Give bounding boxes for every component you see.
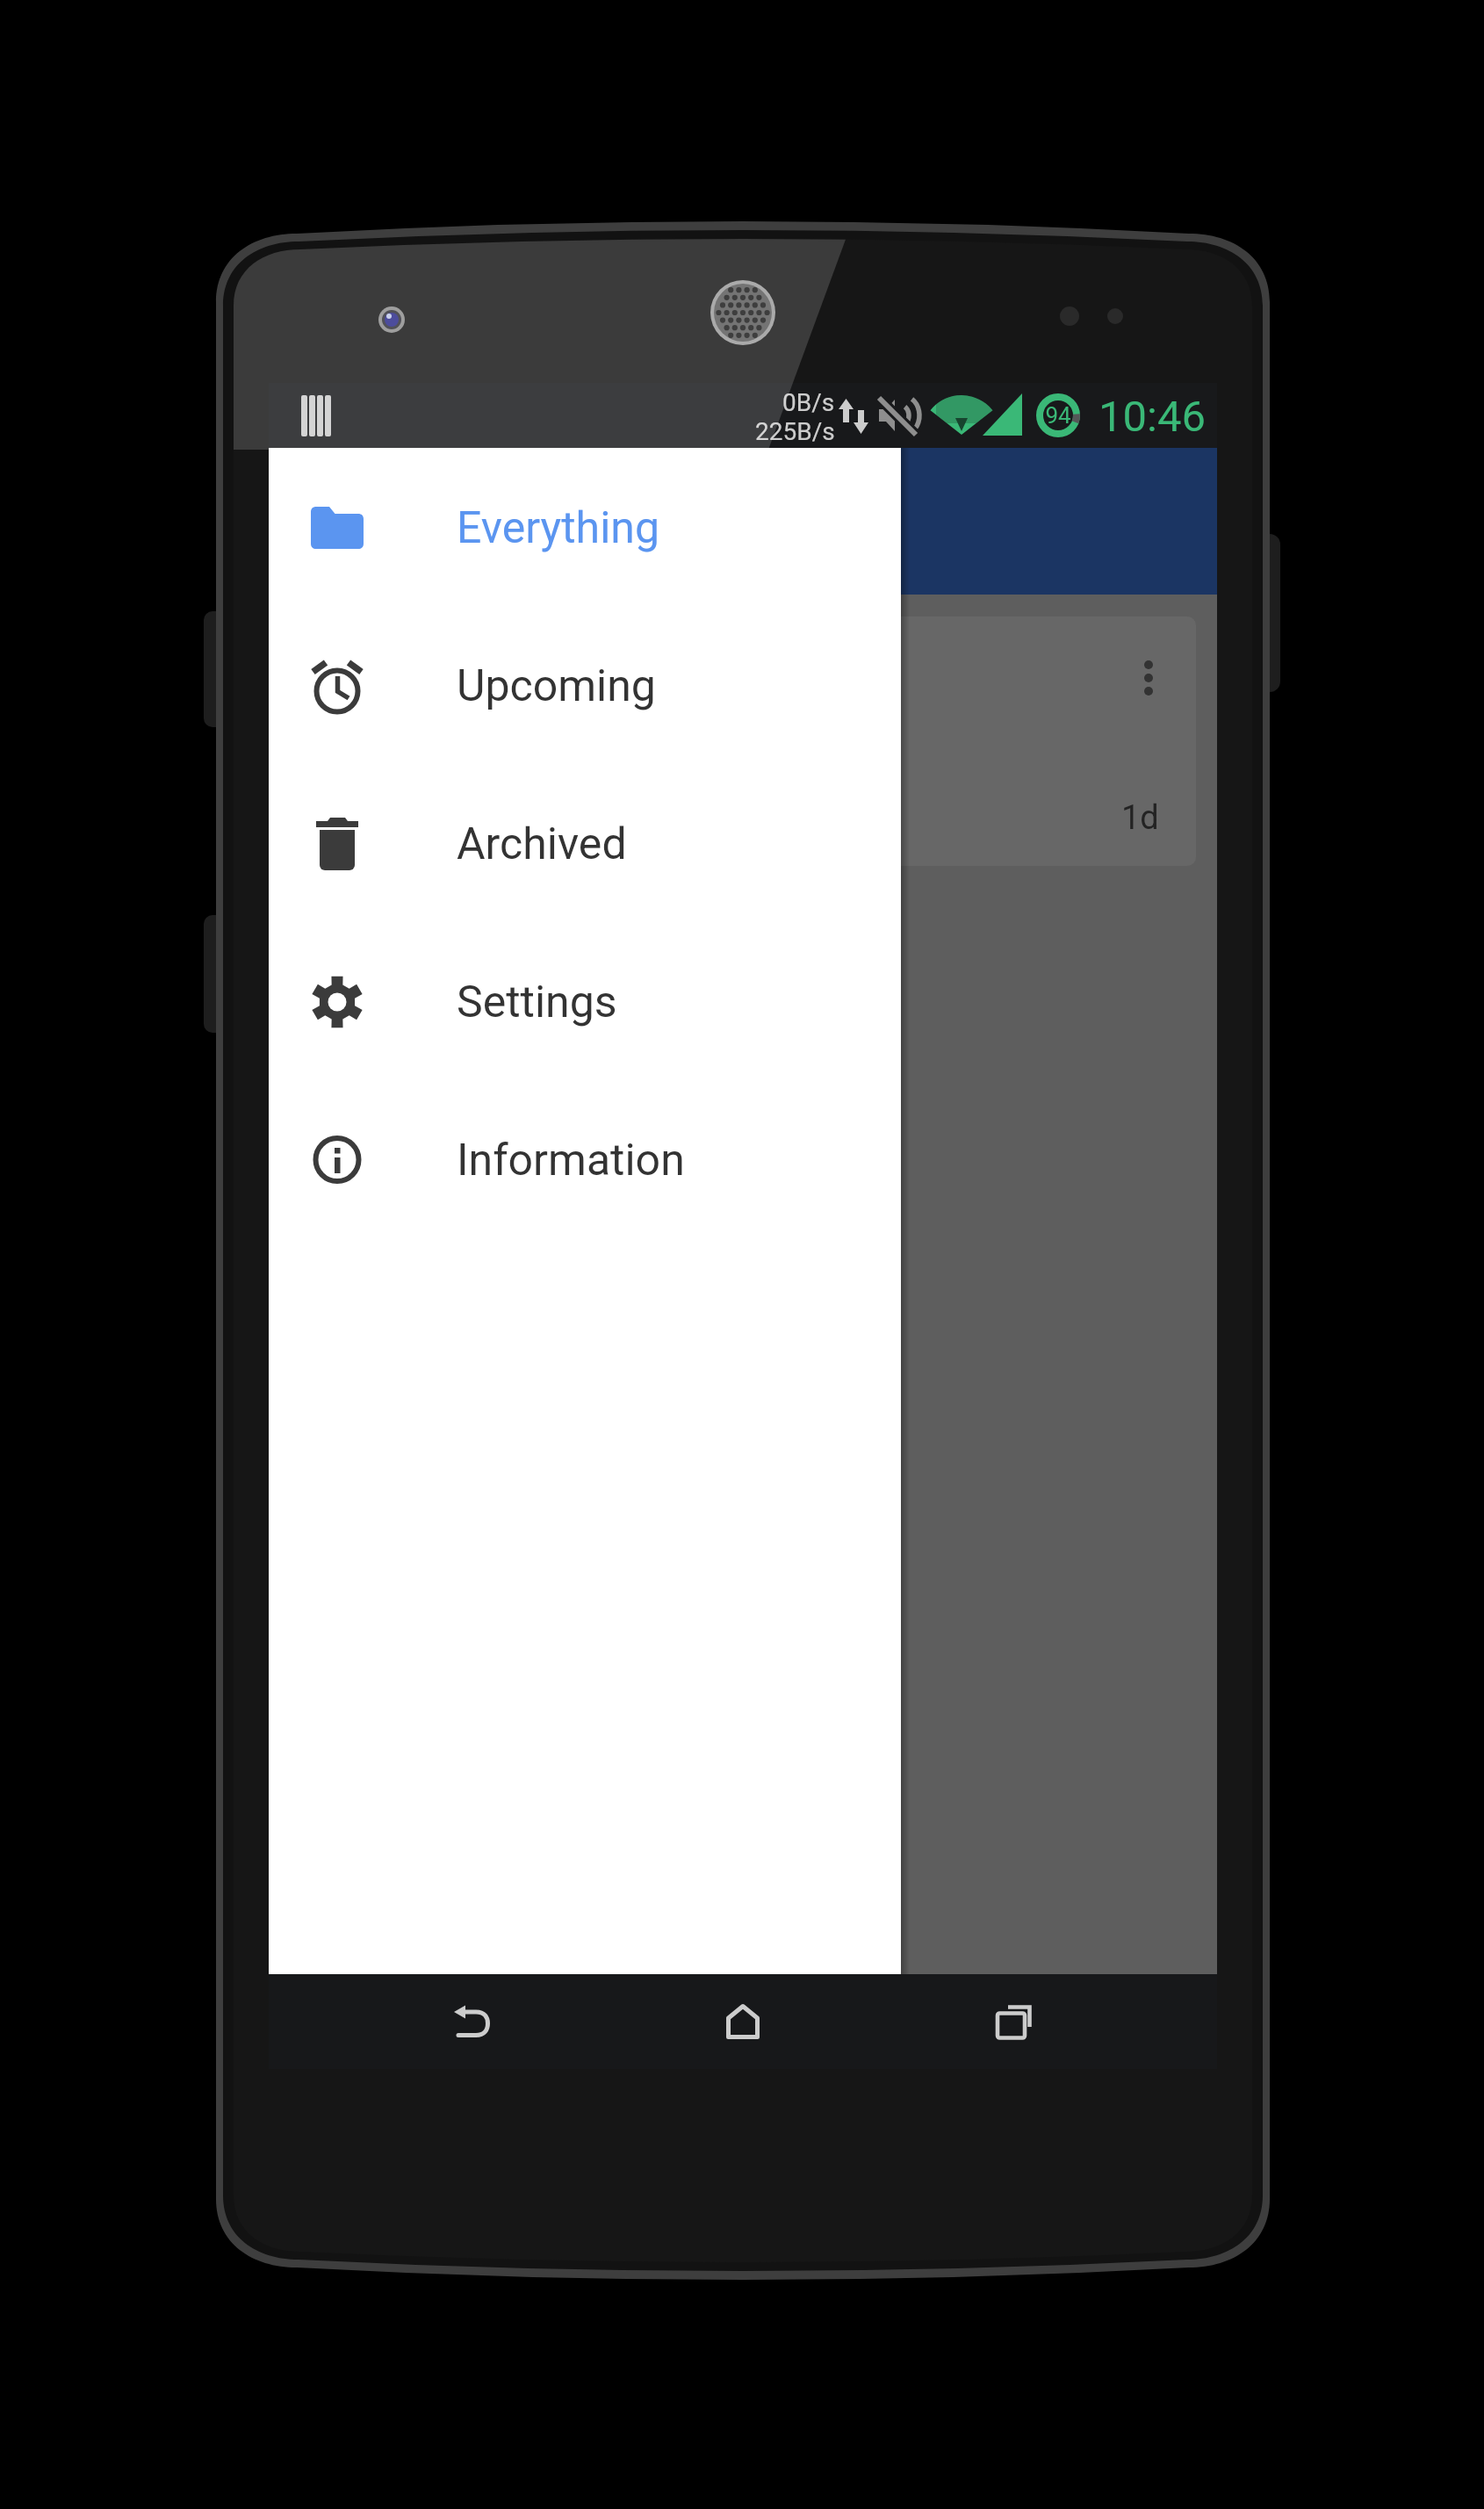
- staticText: 94: [1045, 402, 1071, 429]
- staticText: 1d: [1121, 798, 1159, 838]
- button[interactable]: Recent apps: [966, 1974, 1061, 2069]
- button[interactable]: Upcoming: [269, 607, 901, 765]
- staticText: Upcoming: [457, 660, 656, 712]
- staticText: Settings: [457, 977, 617, 1028]
- button[interactable]: 1d: [290, 616, 1196, 866]
- staticText: 225B/s: [755, 417, 835, 446]
- staticText: 10:46: [1099, 392, 1207, 442]
- staticText: Information: [457, 1135, 685, 1186]
- button[interactable]: Archived: [269, 765, 901, 923]
- button[interactable]: Back: [424, 1974, 519, 2069]
- button[interactable]: Settings: [269, 923, 901, 1081]
- staticText: Archived: [457, 818, 627, 870]
- staticText: 0B/s: [782, 388, 835, 417]
- staticText: Everything: [457, 502, 659, 554]
- button[interactable]: Everything: [269, 449, 901, 607]
- button[interactable]: Home: [695, 1974, 790, 2069]
- button[interactable]: Information: [269, 1081, 901, 1239]
